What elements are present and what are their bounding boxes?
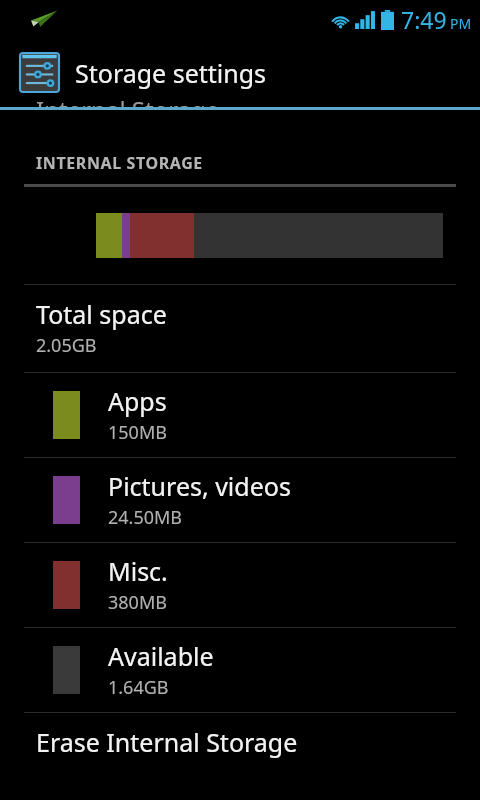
staticText: Erase Internal Storage [36,725,298,759]
button[interactable]: Settings [0,38,480,107]
staticText: Apps [108,384,167,418]
staticText: 380MB [108,590,167,615]
staticText: PM [450,14,472,33]
button[interactable]: Misc. [0,543,480,627]
staticText: 24.50MB [108,505,183,530]
button[interactable]: Available [0,628,480,712]
staticText: Internal Storage [36,93,220,107]
staticText: Pictures, videos [108,469,291,503]
button[interactable]: Apps [0,373,480,457]
staticText: INTERNAL STORAGE [36,152,203,174]
button[interactable]: Total space [0,285,480,372]
staticText: Total space [36,297,167,331]
staticText: 150MB [108,420,167,445]
staticText: Misc. [108,554,168,588]
button[interactable]: Pictures, videos [0,458,480,542]
staticText: 1.64GB [108,675,169,700]
staticText: 7:49 [401,4,447,35]
staticText: Available [108,639,214,673]
button[interactable]: Erase Internal Storage [0,713,480,759]
staticText: 2.05GB [36,333,97,358]
other: Settings [20,53,59,92]
staticText: Storage settings [75,56,267,90]
